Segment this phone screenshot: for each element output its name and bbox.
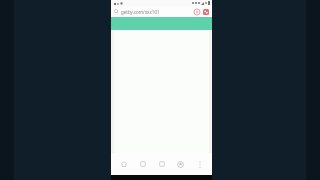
staticText: getby.com/xxx101 bbox=[121, 9, 191, 15]
other: Site information bbox=[114, 9, 119, 14]
button[interactable]: Home bbox=[115, 154, 132, 174]
button[interactable]: Extensions bbox=[202, 8, 209, 15]
button[interactable]: Account bbox=[172, 154, 189, 174]
button[interactable]: Profile bbox=[193, 8, 200, 15]
button[interactable]: Tabs bbox=[134, 154, 151, 174]
button[interactable]: Site information bbox=[111, 6, 212, 17]
button[interactable]: More options bbox=[191, 154, 208, 174]
button[interactable]: New tab bbox=[153, 154, 170, 174]
